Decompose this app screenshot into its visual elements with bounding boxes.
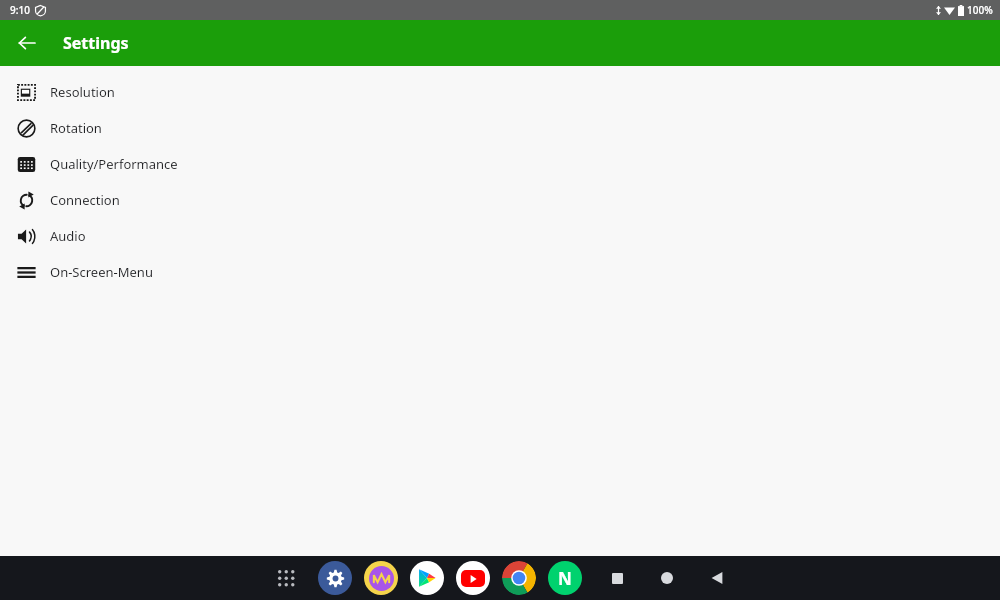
button[interactable]: Quality/Performance: [0, 146, 1000, 182]
button[interactable]: NordVPN: [548, 561, 582, 595]
staticText: Audio: [50, 227, 86, 245]
staticText: Settings: [63, 32, 129, 54]
button[interactable]: Home: [650, 561, 684, 595]
staticText: On-Screen-Menu: [50, 263, 153, 281]
staticText: Connection: [50, 191, 120, 209]
button[interactable]: Play Store: [410, 561, 444, 595]
staticText: 100%: [967, 3, 993, 17]
button[interactable]: On-Screen-Menu: [0, 254, 1000, 290]
staticText: Rotation: [50, 119, 102, 137]
button[interactable]: Audio: [0, 218, 1000, 254]
button[interactable]: All apps: [266, 558, 306, 598]
button[interactable]: Chrome: [502, 561, 536, 595]
button[interactable]: Back: [8, 24, 46, 62]
button[interactable]: Rotation: [0, 110, 1000, 146]
button[interactable]: Moonlight: [364, 561, 398, 595]
button[interactable]: YouTube: [456, 561, 490, 595]
staticText: N: [558, 567, 572, 590]
button[interactable]: Back: [700, 561, 734, 595]
button[interactable]: Resolution: [0, 74, 1000, 110]
button[interactable]: Connection: [0, 182, 1000, 218]
staticText: 9:10: [10, 3, 30, 17]
button[interactable]: Settings app: [318, 561, 352, 595]
staticText: Resolution: [50, 83, 115, 101]
button[interactable]: Recents: [600, 561, 634, 595]
staticText: Quality/Performance: [50, 155, 178, 173]
